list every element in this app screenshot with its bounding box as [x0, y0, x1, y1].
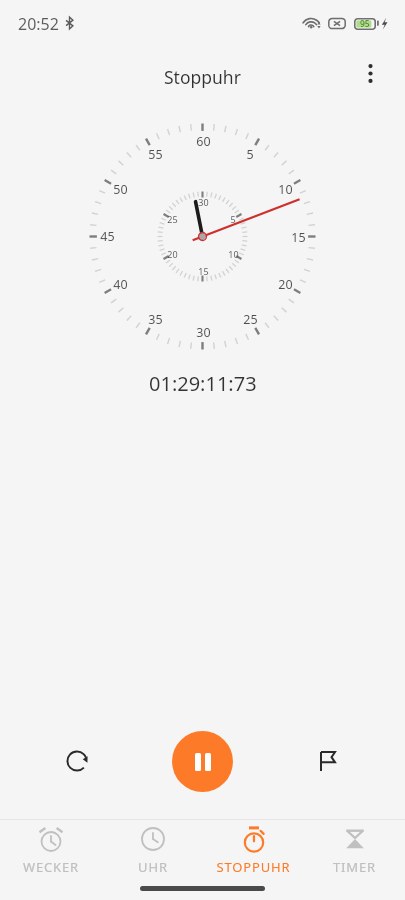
staticText: 20: [278, 276, 293, 293]
button[interactable]: TIMER: [304, 820, 405, 877]
staticText: 10: [228, 248, 239, 260]
staticText: 45: [100, 228, 115, 245]
staticText: 15: [291, 229, 306, 246]
button[interactable]: STOPPUHR: [203, 820, 304, 877]
button[interactable]: More options: [348, 51, 392, 95]
button[interactable]: UHR: [102, 820, 203, 877]
staticText: UHR: [138, 858, 168, 876]
staticText: 15: [198, 265, 209, 277]
staticText: 55: [148, 146, 163, 163]
staticText: 30: [196, 324, 211, 341]
button[interactable]: Lap: [297, 730, 359, 792]
staticText: TIMER: [333, 858, 376, 876]
button[interactable]: Pause: [172, 731, 233, 792]
staticText: 20: [167, 248, 178, 260]
staticText: 30: [198, 196, 209, 208]
staticText: 20:52: [18, 13, 59, 35]
staticText: 95: [360, 18, 370, 30]
staticText: 10: [278, 181, 293, 198]
staticText: WECKER: [23, 858, 79, 876]
staticText: 25: [243, 311, 258, 328]
staticText: 40: [113, 276, 128, 293]
staticText: STOPPUHR: [216, 858, 291, 876]
staticText: 01:29:11:73: [149, 370, 257, 397]
staticText: 35: [148, 311, 163, 328]
staticText: 60: [196, 133, 211, 150]
button[interactable]: Reset: [46, 730, 108, 792]
staticText: 25: [167, 213, 178, 225]
staticText: Stoppuhr: [164, 65, 241, 89]
staticText: 50: [113, 181, 128, 198]
staticText: 5: [246, 146, 254, 163]
staticText: 5: [230, 213, 236, 225]
button[interactable]: WECKER: [0, 820, 102, 877]
